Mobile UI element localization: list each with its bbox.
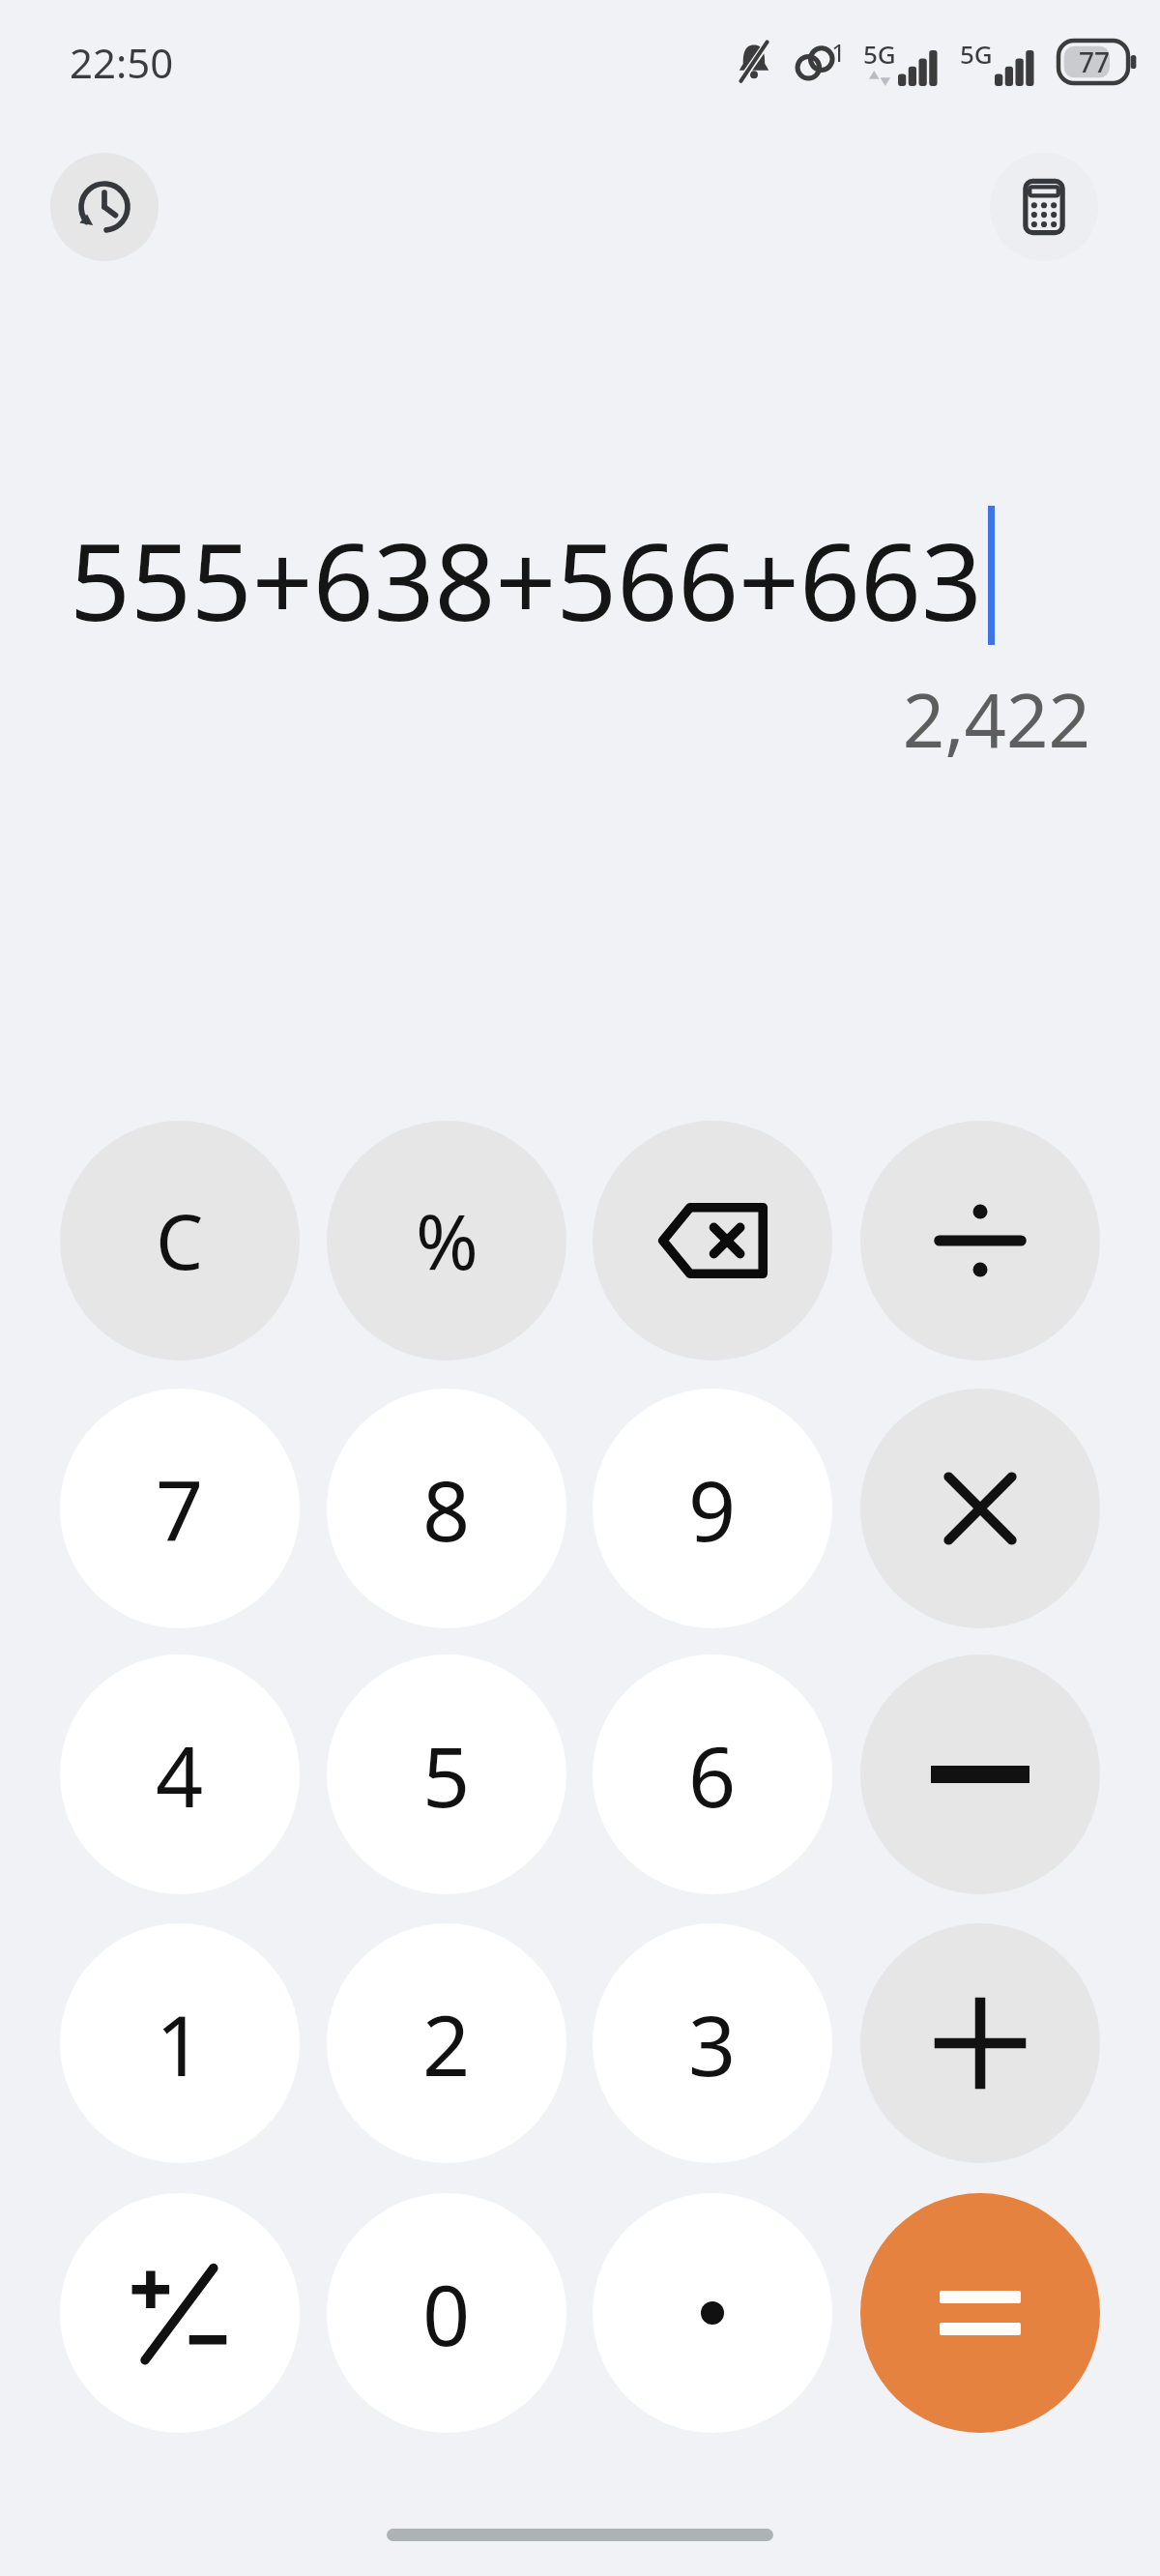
button[interactable]: 8 bbox=[327, 1389, 566, 1628]
button[interactable]: Plus bbox=[860, 1923, 1100, 2163]
button[interactable]: 2 bbox=[327, 1923, 566, 2163]
button[interactable]: Multiply bbox=[860, 1389, 1100, 1628]
button[interactable]: 4 bbox=[60, 1654, 300, 1894]
button[interactable]: 3 bbox=[593, 1923, 832, 2163]
button[interactable]: Divide bbox=[860, 1121, 1100, 1361]
staticText: 7 bbox=[156, 1452, 204, 1566]
button[interactable]: % bbox=[327, 1121, 566, 1361]
button[interactable]: History bbox=[50, 153, 159, 261]
button[interactable]: Calculator mode bbox=[990, 153, 1098, 261]
button[interactable]: C bbox=[60, 1121, 300, 1361]
button[interactable]: 5 bbox=[327, 1654, 566, 1894]
staticText: 4 bbox=[156, 1718, 204, 1831]
staticText: 9 bbox=[688, 1452, 737, 1566]
button[interactable]: 0 bbox=[327, 2193, 566, 2433]
staticText: 5G bbox=[960, 37, 993, 71]
staticText: C bbox=[156, 1189, 204, 1292]
staticText: 2 bbox=[422, 1987, 471, 2100]
staticText: 2,422 bbox=[0, 669, 1090, 770]
button[interactable]: Minus bbox=[860, 1654, 1100, 1894]
staticText: 6 bbox=[688, 1718, 737, 1831]
button[interactable]: Backspace bbox=[593, 1121, 832, 1361]
button[interactable]: Equals bbox=[860, 2193, 1100, 2433]
button[interactable]: 6 bbox=[593, 1654, 832, 1894]
button[interactable]: Toggle sign bbox=[60, 2193, 300, 2433]
staticText: 1 bbox=[831, 35, 846, 69]
staticText: 5G bbox=[863, 37, 896, 71]
staticText: 3 bbox=[688, 1987, 737, 2100]
staticText: 22:50 bbox=[70, 35, 174, 90]
staticText: 77 bbox=[1079, 44, 1111, 80]
staticText: 5 bbox=[422, 1718, 471, 1831]
button[interactable]: 7 bbox=[60, 1389, 300, 1628]
button[interactable]: 1 bbox=[60, 1923, 300, 2163]
staticText: 555+638+566+663 bbox=[70, 507, 982, 652]
button[interactable]: 9 bbox=[593, 1389, 832, 1628]
staticText: 1 bbox=[156, 1987, 204, 2100]
staticText: 8 bbox=[422, 1452, 471, 1566]
staticText: % bbox=[416, 1189, 478, 1292]
staticText: 0 bbox=[422, 2257, 471, 2370]
button[interactable]: Decimal point bbox=[593, 2193, 832, 2433]
